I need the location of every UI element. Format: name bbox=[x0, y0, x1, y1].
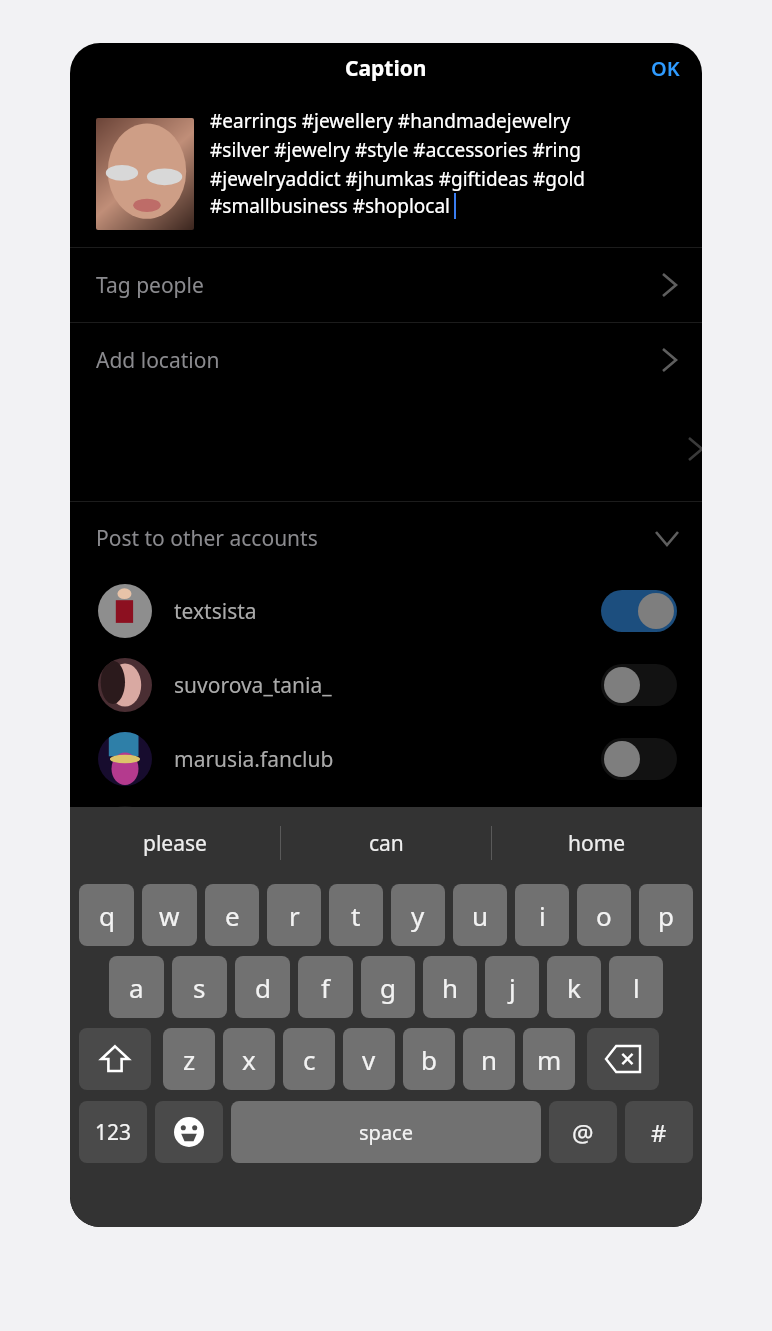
staticText: z bbox=[183, 1042, 196, 1077]
staticText: Caption bbox=[345, 54, 427, 83]
button[interactable]: textsista bbox=[70, 574, 702, 648]
button[interactable]: Toggle suvorova_tania_ bbox=[601, 664, 677, 706]
button[interactable]: space bbox=[231, 1101, 541, 1163]
button[interactable]: q bbox=[79, 884, 134, 946]
staticText: g bbox=[380, 970, 396, 1005]
staticText: y bbox=[411, 898, 425, 933]
button[interactable]: Backspace bbox=[587, 1028, 659, 1090]
button[interactable]: w bbox=[142, 884, 197, 946]
button[interactable]: m bbox=[523, 1028, 575, 1090]
button[interactable]: x bbox=[223, 1028, 275, 1090]
staticText: a bbox=[129, 970, 144, 1005]
staticText: h bbox=[442, 970, 459, 1005]
button[interactable]: j bbox=[485, 956, 539, 1018]
staticText: u bbox=[472, 898, 489, 933]
button[interactable]: @ bbox=[549, 1101, 617, 1163]
staticText: t bbox=[351, 898, 361, 933]
button[interactable]: d bbox=[235, 956, 290, 1018]
button[interactable]: u bbox=[453, 884, 507, 946]
staticText: #smallbusiness #shoplocal bbox=[210, 193, 451, 219]
staticText: home bbox=[568, 829, 626, 858]
button[interactable]: Tag people bbox=[70, 248, 702, 322]
staticText: can bbox=[369, 829, 404, 858]
staticText: p bbox=[658, 898, 674, 933]
staticText: q bbox=[99, 898, 115, 933]
button[interactable]: g bbox=[361, 956, 415, 1018]
staticText: sergeyloben bbox=[174, 819, 296, 848]
staticText: k bbox=[567, 970, 581, 1005]
button[interactable]: # bbox=[625, 1101, 693, 1163]
staticText: f bbox=[321, 970, 330, 1005]
staticText: m bbox=[537, 1042, 562, 1077]
staticText: OK bbox=[651, 55, 680, 82]
staticText: please bbox=[143, 829, 207, 858]
button[interactable]: v bbox=[343, 1028, 395, 1090]
staticText: n bbox=[481, 1042, 498, 1077]
staticText: @ bbox=[572, 1116, 594, 1149]
staticText: Add location bbox=[96, 346, 220, 375]
staticText: #jewelryaddict #jhumkas #giftideas #gold bbox=[210, 166, 586, 192]
button[interactable]: please bbox=[70, 807, 280, 879]
staticText: Post to other accounts bbox=[96, 524, 318, 553]
button[interactable]: e bbox=[205, 884, 259, 946]
button[interactable]: y bbox=[391, 884, 445, 946]
button[interactable]: home bbox=[492, 807, 702, 879]
button[interactable]: suvorova_tania_ bbox=[70, 648, 702, 722]
button[interactable]: Emoji bbox=[155, 1101, 223, 1163]
staticText: v bbox=[362, 1042, 376, 1077]
button[interactable]: Toggle sergeyloben bbox=[601, 812, 677, 854]
button[interactable]: b bbox=[403, 1028, 455, 1090]
staticText: c bbox=[303, 1042, 316, 1077]
button[interactable]: o bbox=[577, 884, 631, 946]
staticText: textsista bbox=[174, 597, 257, 626]
staticText: b bbox=[421, 1042, 437, 1077]
button[interactable]: Shift bbox=[79, 1028, 151, 1090]
staticText: i bbox=[539, 898, 546, 933]
button[interactable]: r bbox=[267, 884, 321, 946]
button[interactable]: Toggle textsista bbox=[601, 590, 677, 632]
button[interactable]: can bbox=[281, 807, 491, 879]
staticText: s bbox=[193, 970, 206, 1005]
button[interactable]: marusia.fanclub bbox=[70, 722, 702, 796]
button[interactable]: Add location bbox=[70, 323, 702, 397]
button[interactable]: Toggle marusia.fanclub bbox=[601, 738, 677, 780]
button[interactable]: a bbox=[109, 956, 164, 1018]
button[interactable]: n bbox=[463, 1028, 515, 1090]
staticText: o bbox=[596, 898, 612, 933]
button[interactable]: OK bbox=[643, 51, 688, 86]
staticText: # bbox=[651, 1116, 667, 1149]
button[interactable]: k bbox=[547, 956, 601, 1018]
button[interactable]: s bbox=[172, 956, 227, 1018]
button[interactable]: Post to other accounts bbox=[70, 502, 702, 574]
staticText: suvorova_tania_ bbox=[174, 671, 332, 700]
staticText: l bbox=[633, 970, 640, 1005]
staticText: #earrings #jewellery #handmadejewelry bbox=[210, 108, 571, 134]
staticText: x bbox=[242, 1042, 256, 1077]
button[interactable]: z bbox=[163, 1028, 215, 1090]
button[interactable]: t bbox=[329, 884, 383, 946]
staticText: w bbox=[159, 898, 180, 933]
button[interactable]: i bbox=[515, 884, 569, 946]
button[interactable]: 123 bbox=[79, 1101, 147, 1163]
staticText: space bbox=[359, 1119, 413, 1146]
staticText: #silver #jewelry #style #accessories #ri… bbox=[210, 137, 581, 163]
button[interactable]: l bbox=[609, 956, 663, 1018]
staticText: d bbox=[255, 970, 271, 1005]
staticText: r bbox=[289, 898, 300, 933]
button[interactable]: c bbox=[283, 1028, 335, 1090]
staticText: marusia.fanclub bbox=[174, 745, 334, 774]
button[interactable]: Post thumbnail bbox=[96, 118, 194, 230]
button[interactable]: sergeyloben bbox=[70, 796, 702, 870]
button[interactable]: p bbox=[639, 884, 693, 946]
staticText: Tag people bbox=[96, 271, 204, 300]
button[interactable]: f bbox=[298, 956, 353, 1018]
staticText: 123 bbox=[95, 1118, 132, 1147]
staticText: j bbox=[509, 970, 516, 1005]
button[interactable]: h bbox=[423, 956, 477, 1018]
staticText: e bbox=[225, 898, 240, 933]
